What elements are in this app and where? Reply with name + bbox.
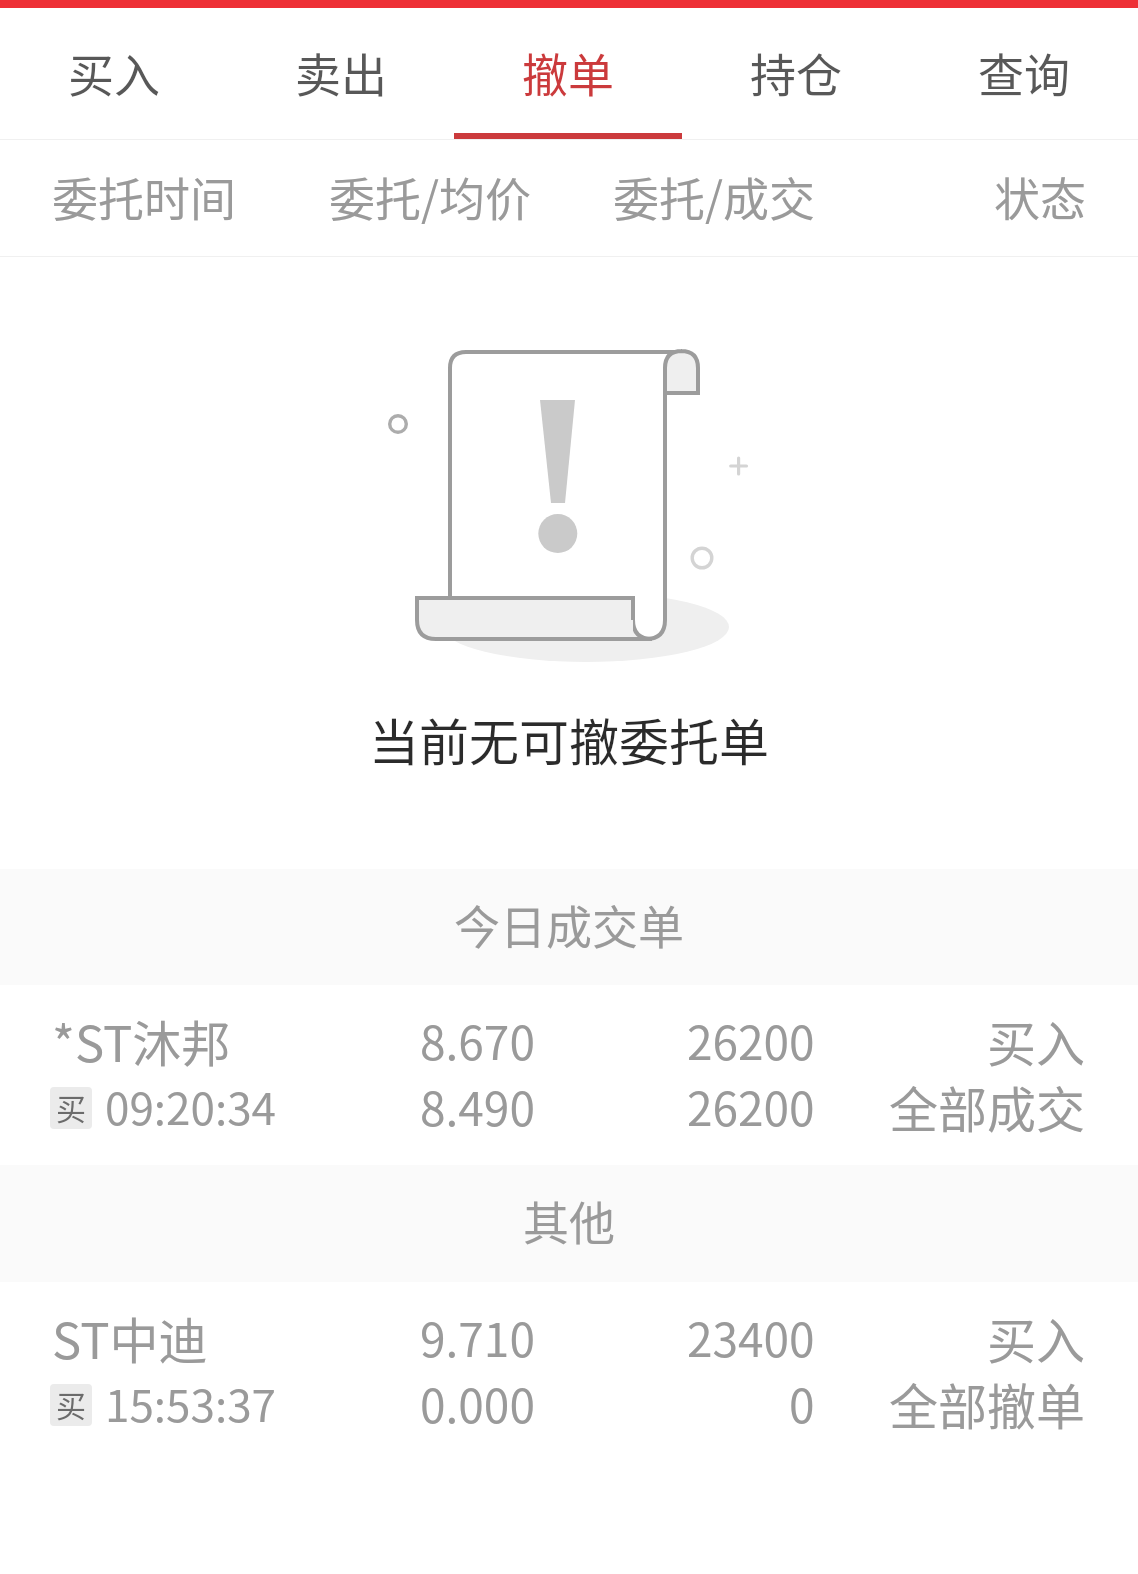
staticText: 买入 [987, 1005, 1086, 1071]
staticText: 8.490 [420, 1073, 535, 1139]
staticText: 撤单 [522, 39, 614, 106]
button[interactable]: 持仓 [682, 8, 910, 139]
staticText: 买 [56, 1087, 86, 1127]
button[interactable]: ST中迪 [0, 1282, 1138, 1462]
staticText: 持仓 [750, 39, 842, 106]
staticText: 今日成交单 [454, 891, 684, 958]
staticText: 买入 [68, 39, 160, 106]
staticText: 15:53:37 [105, 1371, 276, 1435]
staticText: 查询 [978, 39, 1070, 106]
staticText: 0 [789, 1370, 815, 1436]
other: 没有委托单 [0, 350, 1138, 670]
staticText: 23400 [687, 1304, 815, 1370]
staticText: 买入 [987, 1302, 1086, 1368]
staticText: 委托时间 [52, 163, 236, 230]
button[interactable]: 卖出 [227, 8, 454, 139]
staticText: 当前无可撤委托单 [369, 703, 769, 775]
staticText: 全部撤单 [889, 1368, 1086, 1434]
staticText: 其他 [523, 1187, 615, 1254]
staticText: 26200 [687, 1007, 815, 1073]
button[interactable]: 撤单 [454, 8, 682, 139]
staticText: 全部成交 [889, 1071, 1086, 1137]
staticText: 卖出 [295, 39, 387, 106]
staticText: 状态 [994, 163, 1086, 230]
staticText: *ST沐邦 [52, 1005, 231, 1071]
staticText: 委托/成交 [613, 163, 816, 230]
staticText: 0.000 [420, 1370, 535, 1436]
button[interactable]: 查询 [910, 8, 1138, 139]
staticText: 09:20:34 [105, 1074, 276, 1138]
staticText: 26200 [687, 1073, 815, 1139]
button[interactable]: 买入 [0, 8, 227, 139]
staticText: 9.710 [420, 1304, 535, 1370]
staticText: ST中迪 [52, 1302, 208, 1368]
button[interactable]: *ST沐邦 [0, 985, 1138, 1165]
staticText: 8.670 [420, 1007, 535, 1073]
staticText: 买 [56, 1384, 86, 1424]
staticText: 委托/均价 [329, 163, 532, 230]
